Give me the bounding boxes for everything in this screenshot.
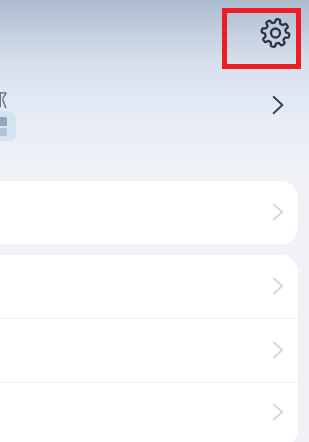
button[interactable]: Open [258, 86, 298, 124]
button[interactable]: Account [0, 111, 16, 141]
button[interactable]: Settings [222, 8, 301, 69]
